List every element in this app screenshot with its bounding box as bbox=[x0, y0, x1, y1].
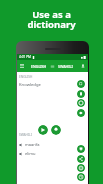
button[interactable]: maarifa bbox=[19, 142, 88, 147]
staticText: Use as a bbox=[32, 8, 71, 21]
staticText: dictionary bbox=[27, 18, 76, 31]
button[interactable]: ENGLISH bbox=[30, 64, 48, 69]
staticText: elimu bbox=[25, 151, 36, 156]
button[interactable]: History bbox=[77, 173, 85, 181]
button[interactable]: SWAHILI bbox=[57, 64, 74, 69]
button[interactable]: Account bbox=[80, 63, 86, 69]
button[interactable]: More bbox=[51, 125, 61, 135]
staticText: SWAHILI bbox=[19, 133, 32, 137]
button[interactable]: Share bbox=[77, 155, 85, 163]
staticText: 4:01 PM bbox=[19, 55, 31, 59]
staticText: ENGLISH bbox=[31, 64, 47, 69]
button[interactable]: Favourite bbox=[77, 145, 85, 153]
staticText: maarifa bbox=[25, 142, 40, 147]
staticText: Knowledge bbox=[19, 82, 41, 88]
button[interactable]: Bookmark bbox=[77, 90, 85, 98]
button[interactable]: Open navigation menu bbox=[19, 63, 25, 69]
button[interactable]: Copy bbox=[77, 80, 85, 88]
button[interactable]: Play bbox=[38, 125, 48, 135]
staticText: SWAHILI bbox=[58, 64, 73, 69]
staticText: ENGLISH bbox=[19, 75, 33, 79]
button[interactable]: Speak bbox=[77, 109, 85, 117]
button[interactable]: Swap languages bbox=[50, 64, 55, 69]
button[interactable]: Share bbox=[77, 99, 85, 107]
button[interactable]: elimu bbox=[19, 151, 88, 156]
button[interactable]: Translate bbox=[77, 164, 85, 172]
